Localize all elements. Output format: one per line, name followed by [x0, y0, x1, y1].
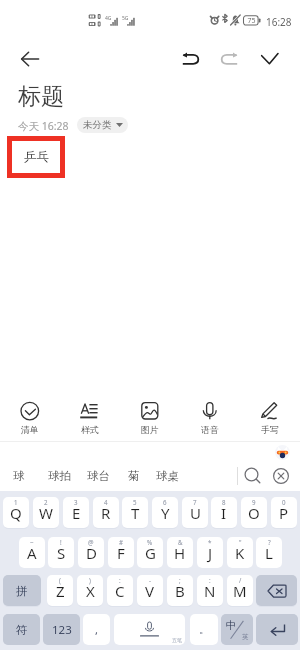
- staticText: D: [86, 543, 97, 563]
- staticText: P: [279, 503, 289, 523]
- staticText: 样式: [81, 425, 99, 436]
- staticText: (: [59, 576, 61, 584]
- staticText: O: [248, 503, 260, 523]
- staticText: :: [209, 576, 211, 584]
- staticText: 5G: [122, 15, 129, 22]
- button[interactable]: Space: [114, 614, 185, 645]
- staticText: ?: [268, 538, 271, 546]
- staticText: W: [39, 503, 53, 523]
- button[interactable]: 2: [33, 497, 59, 528]
- staticText: 4: [104, 498, 108, 506]
- button[interactable]: 球: [1, 463, 37, 489]
- staticText: ~: [30, 538, 34, 546]
- button[interactable]: 清单: [0, 390, 60, 440]
- button[interactable]: 拼: [3, 575, 41, 606]
- staticText: 符: [16, 623, 28, 637]
- button[interactable]: /: [227, 575, 253, 606]
- staticText: @: [88, 538, 94, 546]
- button[interactable]: ": [227, 537, 253, 568]
- staticText: 五笔: [172, 637, 182, 643]
- staticText: ;: [179, 576, 181, 584]
- staticText: A: [27, 543, 37, 563]
- staticText: M: [233, 581, 247, 601]
- staticText: V: [145, 581, 155, 601]
- staticText: 球桌: [156, 469, 179, 483]
- staticText: 16:28: [266, 15, 292, 29]
- button[interactable]: Backspace: [256, 575, 297, 606]
- staticText: K: [235, 543, 245, 563]
- button[interactable]: #: [108, 537, 134, 568]
- staticText: 8: [222, 498, 226, 506]
- button[interactable]: 球台: [80, 463, 116, 489]
- button[interactable]: Done: [252, 41, 288, 77]
- button[interactable]: 符: [3, 614, 40, 645]
- button[interactable]: !: [48, 537, 74, 568]
- staticText: H: [174, 543, 186, 563]
- button[interactable]: Redo: [212, 41, 248, 77]
- staticText: Y: [161, 503, 170, 523]
- button[interactable]: 0: [271, 497, 297, 528]
- button[interactable]: 球拍: [41, 463, 77, 489]
- staticText: I: [221, 503, 227, 523]
- staticText: N: [204, 581, 216, 601]
- button[interactable]: *: [197, 537, 223, 568]
- button[interactable]: -: [137, 575, 163, 606]
- button[interactable]: 手写: [240, 390, 300, 440]
- staticText: 75: [244, 16, 259, 26]
- button[interactable]: 图片: [120, 390, 180, 440]
- staticText: T: [131, 503, 140, 523]
- button[interactable]: Switch Chinese English: [221, 614, 253, 645]
- button[interactable]: 语音: [180, 390, 240, 440]
- staticText: 球: [13, 469, 25, 483]
- staticText: 2: [44, 498, 48, 506]
- button[interactable]: Close: [267, 462, 295, 490]
- button[interactable]: 4: [93, 497, 119, 528]
- staticText: J: [208, 543, 213, 563]
- staticText: G: [145, 543, 156, 563]
- button[interactable]: Undo: [172, 41, 208, 77]
- button[interactable]: 5: [122, 497, 148, 528]
- button[interactable]: ,: [83, 614, 110, 645]
- staticText: ": [239, 538, 242, 546]
- button[interactable]: 菊: [116, 463, 152, 489]
- button[interactable]: 。: [190, 614, 218, 645]
- button[interactable]: Enter: [256, 614, 298, 645]
- button[interactable]: 9: [241, 497, 267, 528]
- staticText: 。: [199, 623, 209, 636]
- staticText: -: [149, 576, 151, 584]
- button[interactable]: %: [137, 537, 163, 568]
- button[interactable]: &: [167, 537, 193, 568]
- staticText: 乒乓: [24, 149, 49, 165]
- button[interactable]: 7: [182, 497, 208, 528]
- staticText: S: [57, 543, 66, 563]
- button[interactable]: :: [107, 575, 133, 606]
- button[interactable]: @: [78, 537, 104, 568]
- staticText: /: [239, 576, 242, 584]
- staticText: &: [178, 538, 183, 546]
- staticText: L: [265, 543, 273, 563]
- staticText: C: [115, 581, 125, 601]
- button[interactable]: (: [47, 575, 73, 606]
- button[interactable]: ?: [256, 537, 282, 568]
- button[interactable]: :: [197, 575, 223, 606]
- staticText: 今天 16:28: [18, 119, 69, 133]
- staticText: 6: [163, 498, 167, 506]
- button[interactable]: 6: [152, 497, 178, 528]
- staticText: 9: [252, 498, 256, 506]
- button[interactable]: 样式: [60, 390, 120, 440]
- staticText: 1: [14, 498, 18, 506]
- button[interactable]: 未分类: [77, 117, 128, 133]
- button[interactable]: ;: [167, 575, 193, 606]
- staticText: 中: [226, 619, 237, 632]
- button[interactable]: ~: [19, 537, 45, 568]
- staticText: 手写: [261, 425, 279, 436]
- button[interactable]: 8: [211, 497, 237, 528]
- button[interactable]: Search: [239, 462, 267, 490]
- button[interactable]: ): [77, 575, 103, 606]
- button[interactable]: 1: [3, 497, 29, 528]
- staticText: 123: [52, 622, 72, 638]
- button[interactable]: 3: [63, 497, 89, 528]
- button[interactable]: 123: [43, 614, 80, 645]
- button[interactable]: 球桌: [149, 463, 185, 489]
- button[interactable]: Back: [12, 41, 48, 77]
